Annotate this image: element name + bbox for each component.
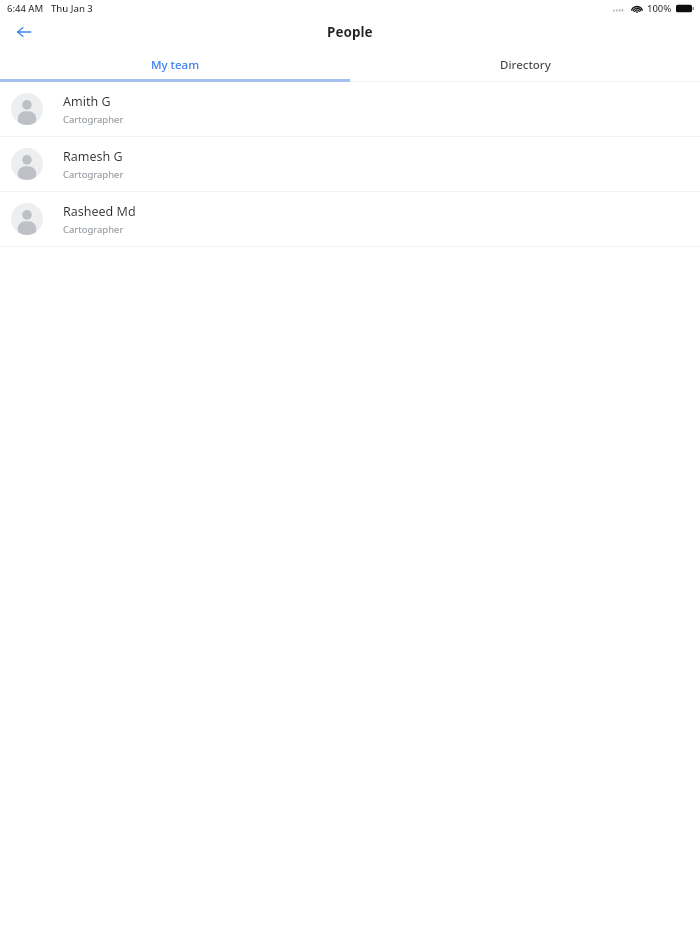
button[interactable]: Directory [350, 48, 700, 82]
staticText: People [327, 23, 373, 41]
staticText: 100% [647, 2, 672, 15]
button[interactable]: My team [0, 48, 350, 82]
staticText: Thu Jan 3 [51, 2, 93, 15]
button[interactable]: Rasheed Md [0, 192, 700, 246]
button[interactable]: Back [10, 18, 38, 46]
staticText: Cartographer [63, 168, 124, 181]
staticText: Cartographer [63, 113, 124, 126]
staticText: My team [151, 57, 200, 73]
button[interactable]: Ramesh G [0, 137, 700, 191]
staticText: Cartographer [63, 223, 124, 236]
button[interactable]: Amith G [0, 82, 700, 136]
staticText: 6:44 AM [7, 2, 44, 15]
staticText: Amith G [63, 93, 111, 110]
staticText: Ramesh G [63, 148, 123, 165]
staticText: Directory [500, 57, 551, 73]
staticText: Rasheed Md [63, 203, 136, 220]
